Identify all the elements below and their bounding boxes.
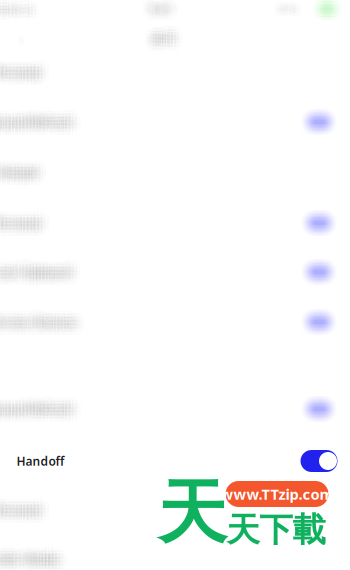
staticText: Personal [4, 72, 53, 88]
staticText: Personal [5, 58, 54, 74]
staticText: Universal Clipboard [0, 270, 75, 285]
staticText: Universal Clipboard [0, 275, 66, 291]
staticText: 通用 [137, 27, 163, 43]
staticText: Share Across Devices [0, 315, 58, 331]
button[interactable]: Transfer Media [0, 0, 350, 570]
staticText: 中国移动 [0, 7, 31, 21]
staticText: Personal [0, 221, 26, 236]
button[interactable]: Hotspot [0, 0, 350, 570]
staticText: Background Refresh [0, 387, 86, 403]
staticText: Personal [0, 226, 36, 242]
staticText: Transfer Media [0, 558, 51, 570]
staticText: 通用 [142, 18, 168, 35]
staticText: Universal Clipboard [0, 257, 59, 273]
button[interactable]: Back [0, 0, 350, 570]
button[interactable]: Personal [0, 0, 350, 570]
staticText: Personal [12, 228, 61, 243]
button[interactable]: Universal Clipboard [0, 0, 350, 570]
staticText: Transfer Media [0, 557, 57, 570]
staticText: 84% [266, 7, 287, 22]
staticText: Universal Clipboard [0, 271, 68, 287]
staticText: Background Refresh [0, 106, 55, 121]
staticText: Background Refresh [0, 397, 66, 413]
staticText: Personal [0, 216, 26, 232]
staticText: Personal [0, 207, 29, 222]
staticText: Personal [0, 75, 29, 91]
staticText: Background Refresh [0, 401, 89, 417]
staticText: Share Across Devices [0, 310, 96, 326]
button[interactable]: Handoff [0, 0, 350, 570]
staticText: Background Refresh [0, 103, 89, 119]
staticText: Share Across Devices [0, 321, 96, 337]
staticText: Personal [0, 503, 25, 519]
staticText: Universal Clipboard [0, 264, 62, 280]
staticText: 84% [261, 5, 282, 19]
staticText: Background Refresh [0, 404, 86, 420]
button[interactable]: Personal [0, 0, 350, 570]
staticText: 通用 [147, 28, 173, 44]
staticText: 84% [276, 6, 297, 20]
staticText: Hotspot [5, 156, 49, 171]
staticText: Background Refresh [0, 404, 79, 420]
button[interactable]: Background Refresh [0, 0, 350, 570]
button[interactable]: Share Across Devices [0, 0, 350, 570]
staticText: 中国移动 [0, 0, 31, 6]
staticText: 中国移动 [0, 0, 34, 6]
staticText: Transfer Media [0, 536, 57, 551]
staticText: Personal [0, 78, 22, 94]
staticText: Personal [0, 488, 44, 504]
staticText: 通用 [153, 24, 179, 40]
staticText: 通用 [146, 32, 172, 49]
staticText: Hotspot [0, 177, 43, 192]
staticText: Transfer Media [0, 557, 52, 570]
staticText: 84% [286, 3, 307, 17]
staticText: Hotspot [0, 151, 38, 167]
button[interactable]: Personal [0, 0, 350, 570]
staticText: 通用 [158, 15, 184, 32]
button[interactable]: Background Refresh [0, 0, 350, 570]
staticText: Transfer Media [0, 538, 59, 554]
staticText: Transfer Media [0, 561, 78, 570]
staticText: Personal [0, 513, 26, 529]
staticText: 通用 [163, 25, 189, 42]
staticText: 中国移动 [0, 5, 40, 20]
staticText: Transfer Media [0, 543, 76, 558]
staticText: Background Refresh [0, 397, 80, 413]
staticText: 9:41 [162, 5, 186, 21]
staticText: Background Refresh [0, 388, 68, 404]
staticText: Transfer Media [0, 545, 55, 561]
